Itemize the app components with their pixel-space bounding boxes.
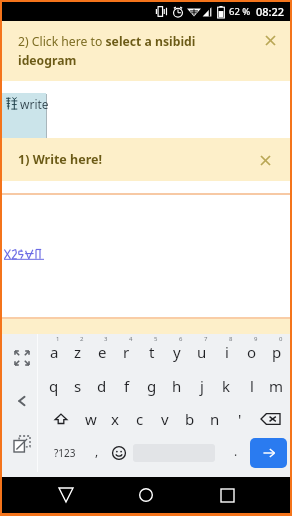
- button[interactable]: Back: [9, 388, 35, 414]
- staticText: 0: [279, 335, 283, 343]
- button[interactable]: n: [202, 402, 227, 436]
- button[interactable]: 5: [139, 334, 164, 368]
- staticText: r: [123, 342, 130, 362]
- staticText: o: [247, 342, 257, 362]
- staticText: w: [85, 409, 97, 429]
- button[interactable]: q: [42, 368, 66, 402]
- staticText: k: [222, 376, 231, 396]
- button[interactable]: Enter: [250, 438, 287, 468]
- button[interactable]: 7: [189, 334, 214, 368]
- button[interactable]: 9: [239, 334, 264, 368]
- button[interactable]: Shift: [42, 402, 79, 436]
- button[interactable]: j: [189, 368, 214, 402]
- button[interactable]: l: [239, 368, 264, 402]
- staticText: j: [200, 376, 204, 396]
- button[interactable]: b: [177, 402, 202, 436]
- button[interactable]: g: [139, 368, 164, 402]
- staticText: 62 %: [229, 5, 251, 18]
- button[interactable]: .: [222, 436, 250, 470]
- staticText: i: [225, 342, 229, 362]
- button[interactable]: k: [214, 368, 239, 402]
- button[interactable]: f: [114, 368, 139, 402]
- button[interactable]: 2) Click here to select a nsibidi ideogr…: [2, 21, 290, 81]
- staticText: b: [185, 409, 195, 429]
- button[interactable]: d: [90, 368, 114, 402]
- staticText: t: [149, 342, 155, 362]
- staticText: .: [234, 443, 238, 459]
- staticText: ?123: [54, 446, 76, 460]
- staticText: m: [269, 376, 284, 396]
- button[interactable]: w: [79, 402, 103, 436]
- button[interactable]: Close: [256, 151, 274, 169]
- button[interactable]: Close: [260, 30, 281, 51]
- staticText: d: [97, 376, 107, 396]
- button[interactable]: 3: [90, 334, 114, 368]
- button[interactable]: Home: [129, 478, 163, 512]
- staticText: ,: [95, 443, 99, 459]
- button[interactable]: c: [127, 402, 152, 436]
- button[interactable]: Floating keyboard: [9, 431, 35, 457]
- button[interactable]: 8: [214, 334, 239, 368]
- staticText: write: [20, 96, 49, 112]
- button[interactable]: Back: [49, 478, 83, 512]
- staticText: 8: [229, 335, 233, 343]
- button[interactable]: s: [66, 368, 90, 402]
- button[interactable]: h: [164, 368, 189, 402]
- button[interactable]: ,: [87, 436, 107, 470]
- staticText: 6: [179, 335, 183, 343]
- staticText: x: [111, 409, 119, 429]
- button[interactable]: ': [227, 402, 252, 436]
- staticText: 08:22: [256, 4, 285, 19]
- staticText: ': [238, 409, 242, 429]
- button[interactable]: Recents: [210, 478, 244, 512]
- staticText: a: [50, 342, 59, 362]
- button[interactable]: 4: [114, 334, 139, 368]
- staticText: 9: [254, 335, 258, 343]
- staticText: f: [124, 376, 130, 396]
- staticText: l: [250, 376, 254, 396]
- staticText: e: [98, 342, 107, 362]
- staticText: 7: [204, 335, 208, 343]
- staticText: 2: [80, 335, 84, 343]
- button[interactable]: v: [152, 402, 177, 436]
- staticText: 1) Write here!: [18, 151, 102, 168]
- staticText: z: [74, 342, 82, 362]
- button[interactable]: ?123: [42, 436, 87, 470]
- staticText: y: [173, 342, 181, 362]
- staticText: 5: [154, 335, 158, 343]
- staticText: g: [147, 376, 157, 396]
- staticText: h: [172, 376, 182, 396]
- staticText: v: [161, 409, 169, 429]
- button[interactable]: m: [264, 368, 289, 402]
- staticText: q: [49, 376, 59, 396]
- staticText: n: [210, 409, 220, 429]
- button[interactable]: [2, 93, 46, 138]
- button[interactable]: Resize keyboard: [9, 345, 35, 371]
- button[interactable]: x: [103, 402, 127, 436]
- button[interactable]: 6: [164, 334, 189, 368]
- staticText: c: [136, 409, 144, 429]
- button[interactable]: 2: [66, 334, 90, 368]
- staticText: u: [197, 342, 207, 362]
- staticText: 2) Click here to select a nsibidi ideogr…: [18, 33, 228, 68]
- button[interactable]: Emoji: [107, 436, 130, 470]
- button[interactable]: 0: [264, 334, 289, 368]
- staticText: s: [74, 376, 82, 396]
- staticText: p: [272, 342, 282, 362]
- staticText: 1: [56, 335, 60, 343]
- button[interactable]: 1: [42, 334, 66, 368]
- staticText: 4: [129, 335, 133, 343]
- staticText: 3: [104, 335, 108, 343]
- button[interactable]: Backspace: [252, 402, 289, 436]
